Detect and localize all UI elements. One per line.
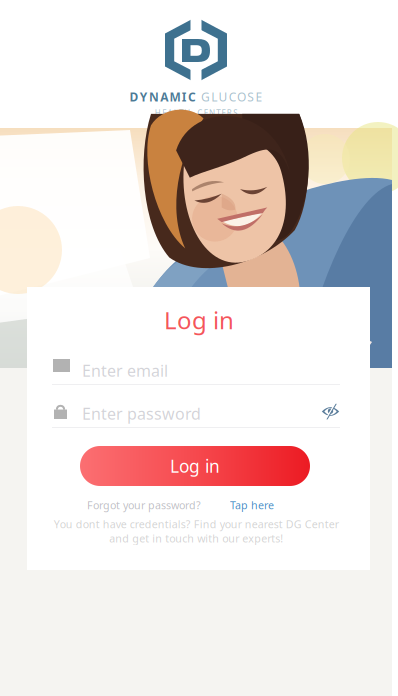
button[interactable]: Tap here [201, 498, 274, 512]
staticText: You dont have credentials? Find your nea… [53, 517, 338, 545]
staticText: HEALTH [155, 108, 190, 118]
button[interactable]: Log in [80, 446, 310, 486]
staticText: Log in [164, 304, 234, 336]
button[interactable]: Show password [321, 405, 340, 418]
staticText: Forgot your password? [87, 498, 201, 512]
staticText: GLUCOSE [201, 89, 262, 105]
staticText: CENTERS [197, 108, 237, 118]
staticText: Enter email [82, 360, 168, 381]
staticText: Enter password [82, 403, 201, 424]
staticText: DYNAMIC [129, 89, 196, 105]
staticText: Log in [170, 454, 220, 477]
staticText: Tap here [230, 498, 274, 512]
